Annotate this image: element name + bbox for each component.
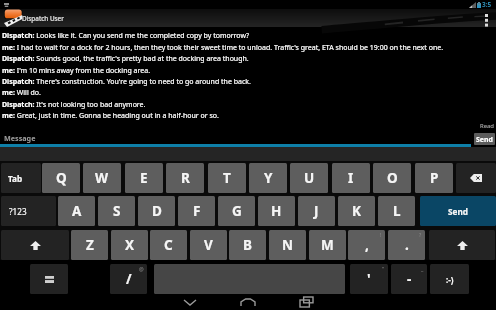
- button[interactable]: W: [83, 163, 121, 193]
- button[interactable]: Shift: [429, 230, 495, 260]
- staticText: O: [387, 169, 398, 187]
- staticText: /: [126, 270, 132, 288]
- staticText: !: [380, 231, 382, 238]
- button[interactable]: :-): [430, 264, 469, 294]
- staticText: Dispatch User: [22, 14, 64, 23]
- staticText: ?123: [9, 206, 27, 217]
- button[interactable]: -: [391, 264, 427, 294]
- button[interactable]: E: [125, 163, 163, 193]
- staticText: Tab: [8, 173, 23, 184]
- button[interactable]: J: [298, 196, 335, 226]
- staticText: E: [140, 169, 148, 187]
- staticText: X: [125, 236, 135, 254]
- button[interactable]: S: [98, 196, 135, 226]
- staticText: D: [152, 202, 162, 220]
- button[interactable]: Message: [0, 130, 471, 145]
- staticText: F: [193, 202, 201, 220]
- staticText: W: [95, 169, 109, 187]
- staticText: Dispatch: Looks like it. Can you send me…: [2, 31, 250, 41]
- staticText: ': [367, 270, 371, 288]
- staticText: :-): [446, 274, 454, 285]
- staticText: L: [393, 202, 401, 220]
- staticText: .: [405, 236, 409, 254]
- button[interactable]: Hide keyboard: [160, 294, 220, 310]
- button[interactable]: Backspace: [456, 163, 496, 193]
- button[interactable]: Q: [42, 163, 80, 193]
- staticText: @: [139, 265, 144, 272]
- staticText: P: [430, 169, 439, 187]
- button[interactable]: Send: [420, 196, 496, 226]
- staticText: N: [282, 236, 293, 254]
- button[interactable]: M: [309, 230, 346, 260]
- staticText: R: [181, 169, 190, 187]
- staticText: Dispatch: Sounds good, the traffic's pre…: [2, 54, 249, 64]
- button[interactable]: R: [166, 163, 204, 193]
- staticText: U: [304, 169, 315, 187]
- button[interactable]: Recent apps: [276, 294, 336, 310]
- button[interactable]: Send: [474, 133, 495, 145]
- staticText: H: [271, 202, 282, 220]
- button[interactable]: F: [178, 196, 215, 226]
- button[interactable]: Z: [71, 230, 108, 260]
- staticText: C: [164, 236, 173, 254]
- staticText: me: Will do.: [2, 88, 41, 98]
- staticText: me: I had to wait for a dock for 2 hours…: [2, 43, 444, 53]
- staticText: -: [407, 270, 412, 288]
- staticText: V: [204, 236, 213, 254]
- button[interactable]: U: [290, 163, 328, 193]
- button[interactable]: Y: [249, 163, 287, 193]
- staticText: me: Great, just in time. Gonna be headin…: [2, 111, 219, 121]
- staticText: Dispatch: It's not looking too bad anymo…: [2, 100, 146, 110]
- staticText: Q: [56, 169, 67, 187]
- button[interactable]: Tab: [1, 163, 41, 193]
- button[interactable]: B: [229, 230, 266, 260]
- staticText: G: [232, 202, 242, 220]
- staticText: S: [113, 202, 121, 220]
- button[interactable]: P: [415, 163, 453, 193]
- button[interactable]: ?123: [1, 196, 56, 226]
- staticText: K: [352, 202, 361, 220]
- button[interactable]: K: [338, 196, 375, 226]
- button[interactable]: ': [350, 264, 388, 294]
- button[interactable]: V: [190, 230, 227, 260]
- button[interactable]: T: [208, 163, 246, 193]
- button[interactable]: N: [269, 230, 306, 260]
- staticText: M: [321, 236, 334, 254]
- button[interactable]: A: [58, 196, 95, 226]
- button[interactable]: C: [150, 230, 187, 260]
- staticText: A: [72, 202, 82, 220]
- button[interactable]: O: [373, 163, 411, 193]
- staticText: _: [421, 265, 424, 272]
- button[interactable]: G: [218, 196, 255, 226]
- button[interactable]: Shift: [1, 230, 69, 260]
- staticText: 3:51: [482, 0, 494, 9]
- button[interactable]: More options: [476, 9, 496, 28]
- staticText: Z: [86, 236, 94, 254]
- staticText: Dispatch: There's construction. You're g…: [2, 77, 251, 87]
- staticText: ,: [365, 236, 369, 254]
- button[interactable]: Switch keyboard: [30, 264, 68, 294]
- staticText: B: [243, 236, 252, 254]
- staticText: ?: [419, 231, 422, 238]
- button[interactable]: L: [378, 196, 415, 226]
- button[interactable]: .: [388, 230, 425, 260]
- staticText: ": [382, 265, 385, 272]
- button[interactable]: H: [258, 196, 295, 226]
- staticText: I: [348, 169, 354, 187]
- button[interactable]: /: [110, 264, 147, 294]
- button[interactable]: Home: [218, 294, 278, 310]
- button[interactable]: ,: [348, 230, 385, 260]
- staticText: Read: [480, 122, 494, 130]
- staticText: Message: [4, 133, 36, 143]
- button[interactable]: D: [138, 196, 175, 226]
- button[interactable]: X: [111, 230, 148, 260]
- button[interactable]: I: [332, 163, 370, 193]
- staticText: me: I'm 10 mins away from the docking ar…: [2, 66, 151, 76]
- staticText: Y: [264, 169, 273, 187]
- staticText: Send: [448, 206, 468, 217]
- staticText: Send: [476, 135, 493, 144]
- staticText: T: [223, 169, 231, 187]
- staticText: J: [314, 202, 319, 220]
